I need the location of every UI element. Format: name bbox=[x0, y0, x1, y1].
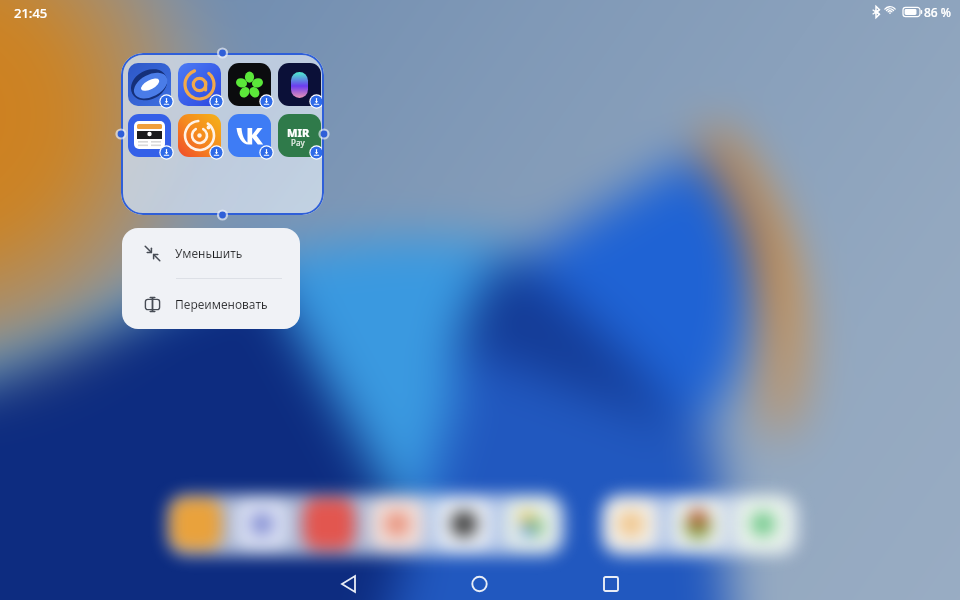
staticText: Pay bbox=[291, 137, 305, 148]
button[interactable]: Уменьшить bbox=[122, 228, 300, 278]
button[interactable]: Переименовать bbox=[122, 279, 300, 329]
staticText: 21:45 bbox=[14, 4, 48, 22]
staticText: Переименовать bbox=[175, 296, 268, 312]
button[interactable]: MIR bbox=[121, 53, 324, 215]
staticText: Уменьшить bbox=[175, 245, 243, 261]
staticText: 86 % bbox=[924, 4, 952, 20]
staticText: MIR bbox=[287, 125, 310, 140]
